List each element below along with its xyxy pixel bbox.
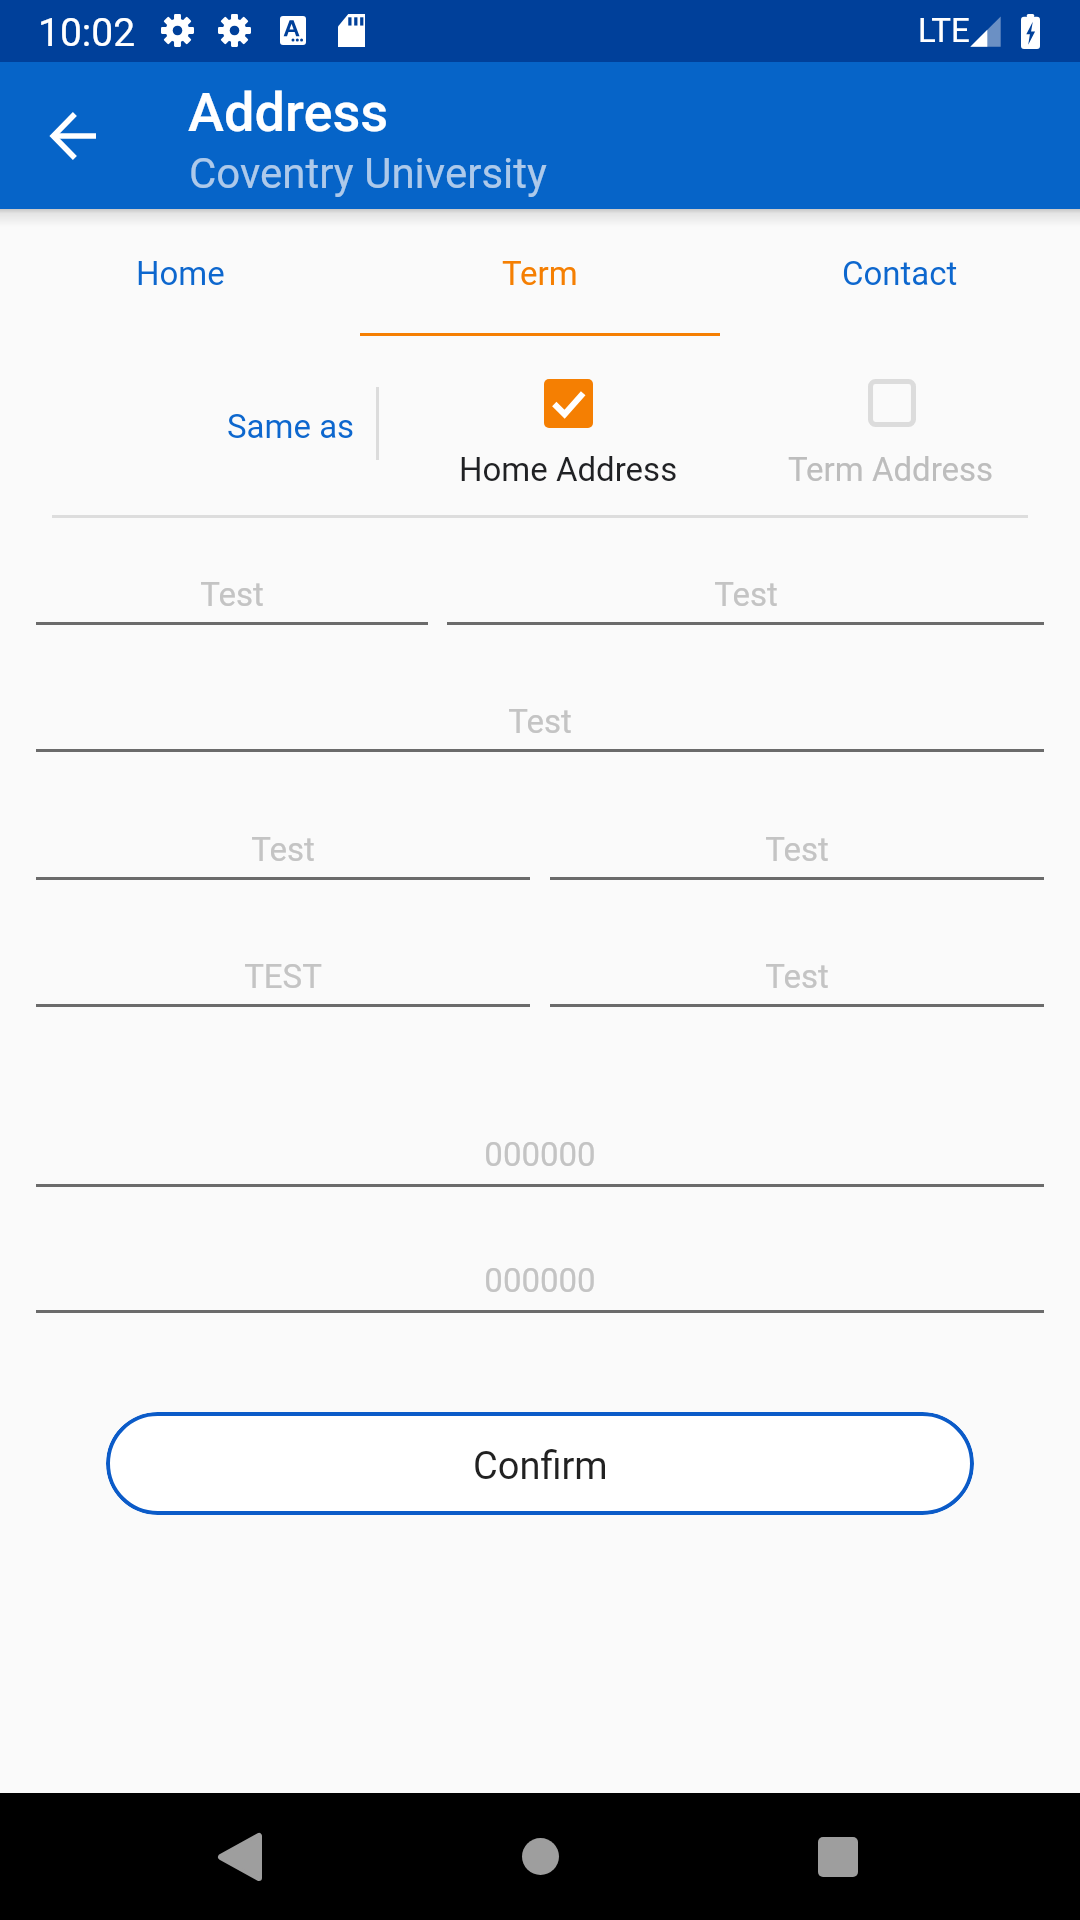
button[interactable]: Home Address — [428, 372, 708, 490]
staticText: Home Address — [459, 450, 678, 489]
staticText: Confirm — [473, 1444, 608, 1489]
button[interactable]: Test — [550, 947, 1044, 1012]
staticText: LTE — [918, 11, 970, 50]
staticText: Test — [200, 575, 264, 614]
button[interactable]: Test — [550, 820, 1044, 885]
staticText: Home — [136, 254, 225, 293]
button[interactable]: Home — [0, 209, 360, 338]
staticText: Test — [508, 702, 572, 741]
staticText: Term — [502, 254, 578, 293]
button[interactable]: Confirm — [106, 1412, 974, 1515]
staticText: Coventry University — [189, 149, 547, 198]
staticText: Address — [188, 81, 389, 144]
staticText: TEST — [244, 957, 322, 996]
button[interactable]: Test — [36, 820, 530, 885]
staticText: Test — [765, 957, 829, 996]
button[interactable]: Test — [36, 565, 428, 630]
button[interactable]: Navigate up — [32, 94, 116, 178]
button[interactable]: 000000 — [36, 1253, 1044, 1318]
staticText: Contact — [842, 254, 958, 293]
staticText: Test — [251, 830, 315, 869]
staticText: Term Address — [788, 450, 994, 489]
staticText: 000000 — [484, 1261, 596, 1300]
staticText: Test — [765, 830, 829, 869]
button[interactable]: Home — [490, 1793, 590, 1920]
staticText: 10:02 — [38, 10, 136, 56]
staticText: 000000 — [484, 1135, 596, 1174]
button[interactable]: Test — [36, 692, 1044, 757]
staticText: Same as — [227, 407, 355, 446]
staticText: Test — [714, 575, 778, 614]
button[interactable]: Back — [190, 1793, 290, 1920]
button[interactable]: Recent apps — [788, 1793, 888, 1920]
button[interactable]: Contact — [720, 209, 1080, 338]
button[interactable]: 000000 — [36, 1127, 1044, 1192]
button[interactable]: Term Address — [751, 372, 1031, 490]
button[interactable]: Term — [360, 209, 720, 338]
button[interactable]: TEST — [36, 947, 530, 1012]
button[interactable]: Test — [447, 565, 1044, 630]
